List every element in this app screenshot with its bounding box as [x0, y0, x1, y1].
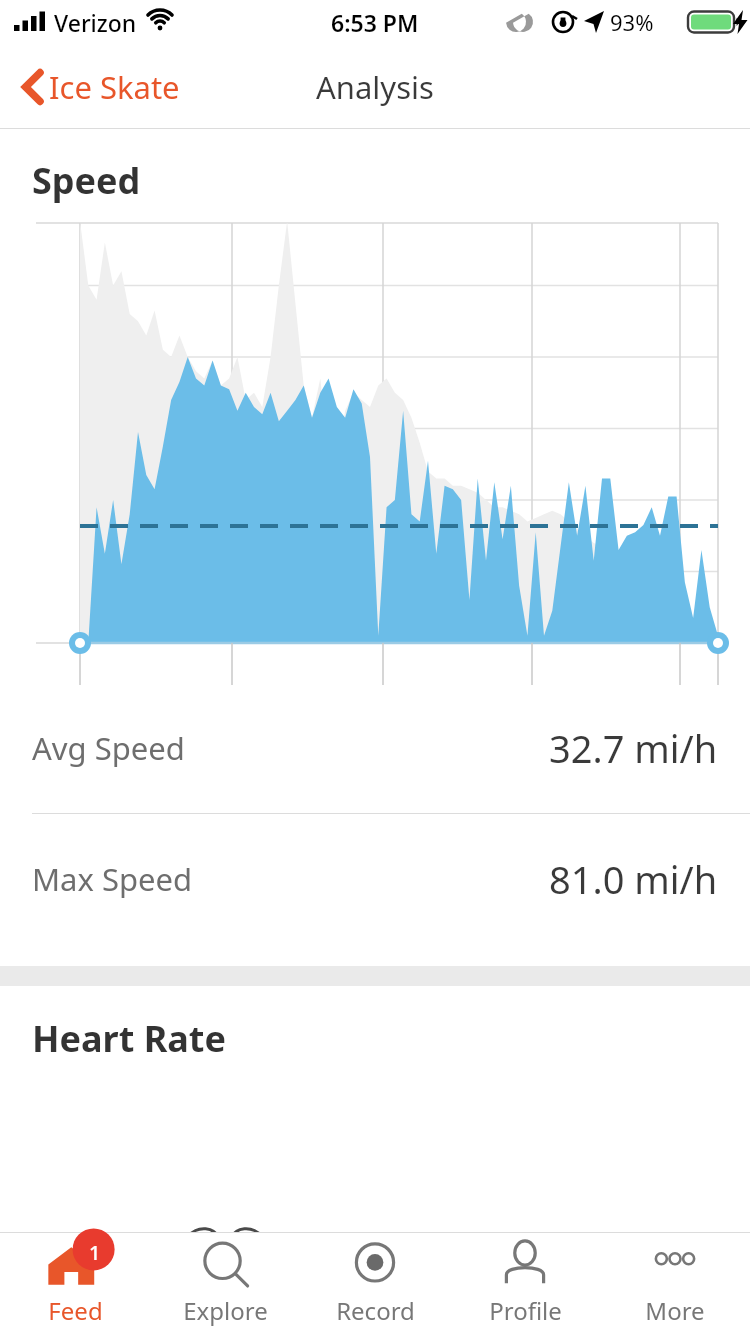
- button[interactable]: 1: [0, 1232, 150, 1334]
- button[interactable]: Ice Skate: [16, 60, 186, 114]
- staticText: Ice Skate: [49, 66, 180, 108]
- staticText: Profile: [489, 1294, 562, 1327]
- staticText: 1: [89, 1239, 101, 1266]
- staticText: 32.7 mi/h: [549, 722, 718, 774]
- staticText: Feed: [48, 1294, 103, 1327]
- staticText: 93%: [610, 7, 654, 37]
- staticText: 81.0 mi/h: [549, 853, 718, 905]
- staticText: Verizon: [54, 7, 137, 38]
- staticText: Heart Rate: [32, 1014, 226, 1063]
- staticText: 6:53 PM: [331, 7, 419, 38]
- staticText: Record: [336, 1294, 415, 1327]
- staticText: Explore: [183, 1294, 268, 1327]
- button[interactable]: Profile: [450, 1232, 600, 1334]
- button[interactable]: Max Speed: [0, 814, 750, 944]
- staticText: Analysis: [316, 66, 434, 108]
- staticText: More: [645, 1294, 705, 1327]
- button[interactable]: Avg Speed: [0, 683, 750, 813]
- staticText: Speed: [32, 156, 141, 205]
- button[interactable]: Explore: [150, 1232, 300, 1334]
- staticText: Max Speed: [32, 858, 193, 900]
- staticText: Avg Speed: [32, 727, 185, 769]
- button[interactable]: Record: [300, 1232, 450, 1334]
- button[interactable]: More: [600, 1232, 750, 1334]
